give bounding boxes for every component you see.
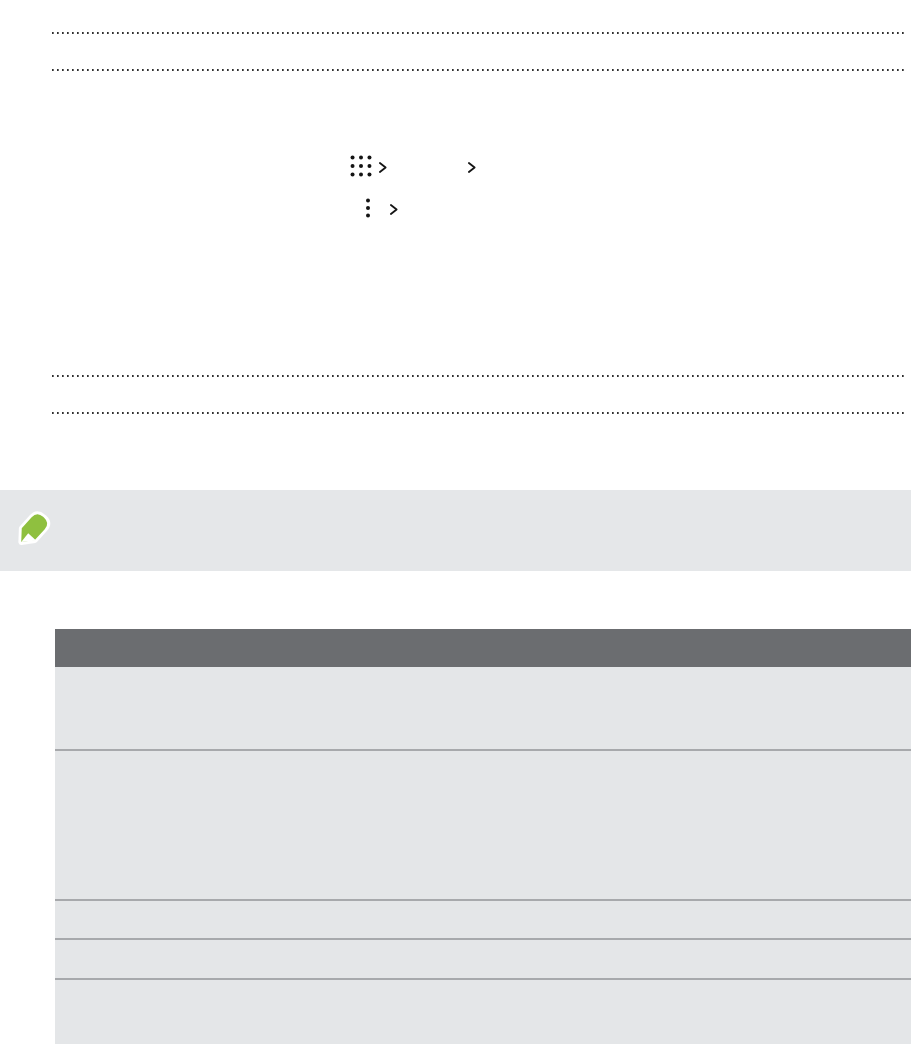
- button[interactable]: Note: [0, 490, 911, 571]
- button[interactable]: All apps: [350, 155, 372, 177]
- other: Note: [11, 507, 55, 551]
- button[interactable]: More options: [357, 197, 379, 219]
